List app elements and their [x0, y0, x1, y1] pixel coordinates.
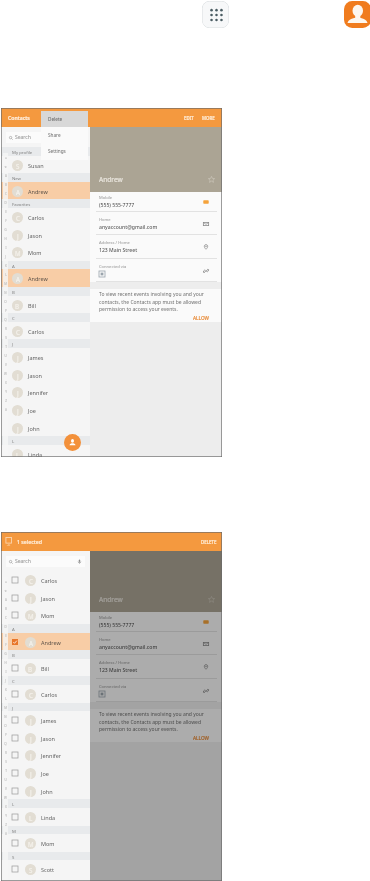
staticText: Jason — [41, 595, 55, 602]
staticText: To view recent events involving you and … — [99, 711, 210, 732]
button[interactable]: J — [1, 782, 90, 800]
staticText: Jason — [28, 232, 42, 239]
staticText: Mom — [41, 840, 55, 847]
staticText: B — [28, 665, 33, 673]
button[interactable]: Mobile — [90, 612, 222, 632]
button[interactable]: C — [1, 322, 90, 340]
staticText: D — [4, 625, 7, 629]
button[interactable]: Settings — [41, 143, 88, 159]
button[interactable]: MORE — [201, 113, 216, 123]
staticText: I — [5, 246, 7, 250]
staticText: A — [16, 188, 20, 196]
staticText: F — [5, 643, 7, 647]
button[interactable]: J — [1, 226, 90, 244]
button[interactable]: L — [1, 808, 90, 826]
button[interactable]: J — [1, 764, 90, 782]
button[interactable]: Select all — [5, 537, 14, 546]
button[interactable]: Address / Home — [90, 235, 222, 259]
button[interactable]: Search — [6, 556, 85, 567]
button[interactable]: J — [1, 729, 90, 747]
staticText: J — [17, 407, 19, 415]
button[interactable]: Add contact — [64, 434, 81, 451]
button[interactable]: C — [1, 208, 90, 226]
staticText: L — [5, 697, 7, 701]
staticText: J — [30, 752, 32, 760]
staticText: J — [17, 232, 19, 240]
button[interactable]: Connected via — [90, 679, 222, 702]
button[interactable]: S — [1, 860, 90, 878]
staticText: C — [29, 577, 33, 585]
button[interactable]: ALLOW — [192, 734, 211, 742]
button[interactable]: EDIT — [183, 113, 195, 123]
staticText: Y — [5, 390, 7, 394]
button[interactable]: Search — [6, 132, 85, 143]
button[interactable]: J — [1, 348, 90, 366]
button[interactable]: Favorite — [208, 176, 215, 183]
staticText: S — [5, 336, 7, 340]
button[interactable]: Home — [90, 212, 222, 235]
staticText: L — [5, 273, 7, 277]
button[interactable]: Contacts — [1, 108, 90, 127]
staticText: C — [29, 691, 33, 699]
button[interactable]: M — [1, 606, 90, 624]
staticText: Linda — [41, 814, 56, 821]
button[interactable]: Contacts app — [344, 1, 370, 28]
staticText: To view recent events involving you and … — [99, 291, 210, 312]
button[interactable]: A — [1, 269, 90, 287]
button[interactable]: Alphabet index — [3, 153, 8, 457]
button[interactable]: Address / Home — [90, 655, 222, 679]
button[interactable]: Connected via — [90, 259, 222, 282]
button[interactable]: C — [1, 685, 90, 703]
button[interactable]: L — [1, 445, 90, 457]
staticText: V — [5, 787, 7, 791]
staticText: John — [28, 425, 40, 432]
button[interactable]: Home — [90, 632, 222, 655]
button[interactable]: Delete — [41, 111, 88, 127]
staticText: S — [5, 760, 7, 764]
staticText: Jennifer — [41, 752, 62, 759]
staticText: K — [5, 688, 7, 692]
button[interactable]: J — [1, 589, 90, 607]
staticText: T — [5, 345, 7, 349]
button[interactable]: Mobile — [90, 192, 222, 212]
button[interactable]: J — [1, 383, 90, 401]
button[interactable]: DELETE — [200, 537, 218, 547]
staticText: L — [16, 451, 20, 457]
button[interactable]: Share — [41, 127, 88, 143]
button[interactable]: J — [1, 746, 90, 764]
staticText: C — [12, 678, 15, 684]
button[interactable]: A — [1, 633, 90, 651]
staticText: A — [29, 639, 33, 647]
button[interactable]: M — [1, 834, 90, 852]
staticText: A — [5, 598, 7, 602]
staticText: N — [4, 715, 7, 719]
button[interactable]: Favorite — [208, 596, 215, 603]
staticText: ALLOW — [193, 315, 210, 321]
staticText: S — [16, 162, 20, 170]
button[interactable]: J — [1, 366, 90, 384]
button[interactable]: B — [1, 296, 90, 314]
staticText: Z — [5, 399, 7, 403]
staticText: M — [28, 840, 34, 848]
button[interactable]: S — [1, 156, 90, 174]
staticText: J — [12, 341, 14, 347]
button[interactable]: J — [1, 711, 90, 729]
staticText: Mobile — [99, 615, 113, 621]
staticText: ★ — [4, 589, 7, 592]
staticText: H — [4, 237, 7, 241]
staticText: J — [30, 595, 32, 603]
staticText: Q — [4, 742, 7, 746]
staticText: J — [17, 372, 19, 380]
button[interactable]: All apps — [202, 1, 229, 28]
button[interactable]: Alphabet index — [3, 577, 8, 881]
staticText: MORE — [202, 115, 215, 121]
button[interactable]: J — [1, 401, 90, 419]
staticText: M — [12, 828, 16, 834]
button[interactable]: A — [1, 182, 90, 200]
button[interactable]: J — [1, 419, 90, 437]
button[interactable]: ALLOW — [192, 314, 211, 322]
button[interactable]: C — [1, 571, 90, 589]
staticText: A — [5, 174, 7, 178]
button[interactable]: M — [1, 243, 90, 261]
button[interactable]: B — [1, 659, 90, 677]
